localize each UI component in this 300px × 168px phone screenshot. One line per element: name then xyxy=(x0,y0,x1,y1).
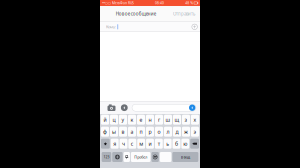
button[interactable]: с xyxy=(128,139,136,149)
staticText: н xyxy=(148,116,151,123)
button[interactable]: Ввод xyxy=(172,152,198,162)
button[interactable]: ж xyxy=(182,127,190,137)
button[interactable]: б xyxy=(172,139,180,149)
staticText: х xyxy=(193,116,196,123)
staticText: Пробел xyxy=(134,154,147,159)
button[interactable]: р xyxy=(146,127,154,137)
staticText: п xyxy=(139,128,142,135)
staticText: ю xyxy=(183,140,187,147)
button[interactable]: ы xyxy=(110,127,118,137)
button[interactable]: Shift xyxy=(101,139,110,149)
staticText: 123 xyxy=(103,155,109,159)
staticText: ш xyxy=(165,116,170,123)
button[interactable]: ф xyxy=(101,127,109,137)
button[interactable]: Пробел xyxy=(131,152,150,162)
staticText: и xyxy=(148,140,151,147)
button[interactable]: х xyxy=(191,115,199,125)
button[interactable]: Отправить xyxy=(171,6,196,22)
button[interactable]: г xyxy=(155,115,163,125)
staticText: ь xyxy=(166,140,169,147)
staticText: ж xyxy=(184,128,188,135)
button[interactable]: ш xyxy=(164,115,172,125)
button[interactable]: ь xyxy=(164,139,172,149)
button[interactable]: ю xyxy=(181,139,189,149)
button[interactable]: к xyxy=(128,115,136,125)
staticText: 48 % xyxy=(185,1,193,5)
button[interactable]: п xyxy=(137,127,145,137)
staticText: ы xyxy=(112,128,116,135)
button[interactable]: Add contact xyxy=(191,23,198,31)
staticText: Отправить xyxy=(173,11,195,17)
staticText: с xyxy=(131,140,134,147)
button[interactable]: м xyxy=(137,139,145,149)
staticText: ц xyxy=(112,116,115,123)
staticText: я xyxy=(113,140,116,147)
staticText: э xyxy=(193,128,196,135)
button[interactable]: Take photo xyxy=(107,103,116,112)
staticText: •••○○ МегаФон RUS xyxy=(102,1,134,5)
staticText: 08:40 xyxy=(155,1,164,5)
staticText: ф xyxy=(103,128,107,135)
staticText: е xyxy=(139,116,142,123)
staticText: у xyxy=(121,116,124,123)
button[interactable]: и xyxy=(146,139,154,149)
button[interactable]: Switch keyboard xyxy=(112,152,123,162)
button[interactable]: о xyxy=(155,127,163,137)
button[interactable]: д xyxy=(173,127,181,137)
staticText: к xyxy=(130,116,133,123)
staticText: л xyxy=(166,128,169,135)
staticText: о xyxy=(157,128,160,135)
staticText: т xyxy=(158,140,160,147)
button[interactable]: л xyxy=(164,127,172,137)
button[interactable]: Apps xyxy=(121,103,128,112)
staticText: р xyxy=(148,128,151,135)
button[interactable]: й xyxy=(101,115,109,125)
staticText: Кому: xyxy=(106,24,116,29)
staticText: б xyxy=(175,140,178,147)
button[interactable]: ц xyxy=(110,115,118,125)
button[interactable]: а xyxy=(128,127,136,137)
staticText: д xyxy=(175,128,178,135)
staticText: ч xyxy=(122,140,125,147)
button[interactable]: Dictate xyxy=(124,152,130,162)
staticText: г xyxy=(158,116,160,123)
button[interactable]: у xyxy=(119,115,127,125)
button[interactable]: в xyxy=(119,127,127,137)
staticText: Ввод xyxy=(181,154,190,160)
staticText: м xyxy=(139,140,143,147)
button[interactable]: з xyxy=(182,115,190,125)
button[interactable]: щ xyxy=(173,115,181,125)
button[interactable]: т xyxy=(155,139,163,149)
button[interactable]: Emoji xyxy=(151,152,159,162)
staticText: Новое сообщение xyxy=(116,11,156,17)
staticText: в xyxy=(121,128,124,135)
button[interactable]: э xyxy=(191,127,199,137)
button[interactable]: е xyxy=(137,115,145,125)
staticText: а xyxy=(130,128,133,135)
button[interactable]: Delete xyxy=(190,139,199,149)
button[interactable]: я xyxy=(111,139,119,149)
button[interactable]: ч xyxy=(120,139,127,149)
staticText: щ xyxy=(174,116,179,123)
staticText: з xyxy=(184,116,187,123)
button[interactable]: 123 xyxy=(102,152,111,162)
staticText: й xyxy=(103,116,106,123)
button[interactable]: н xyxy=(146,115,154,125)
button[interactable]: Send message xyxy=(189,104,195,111)
